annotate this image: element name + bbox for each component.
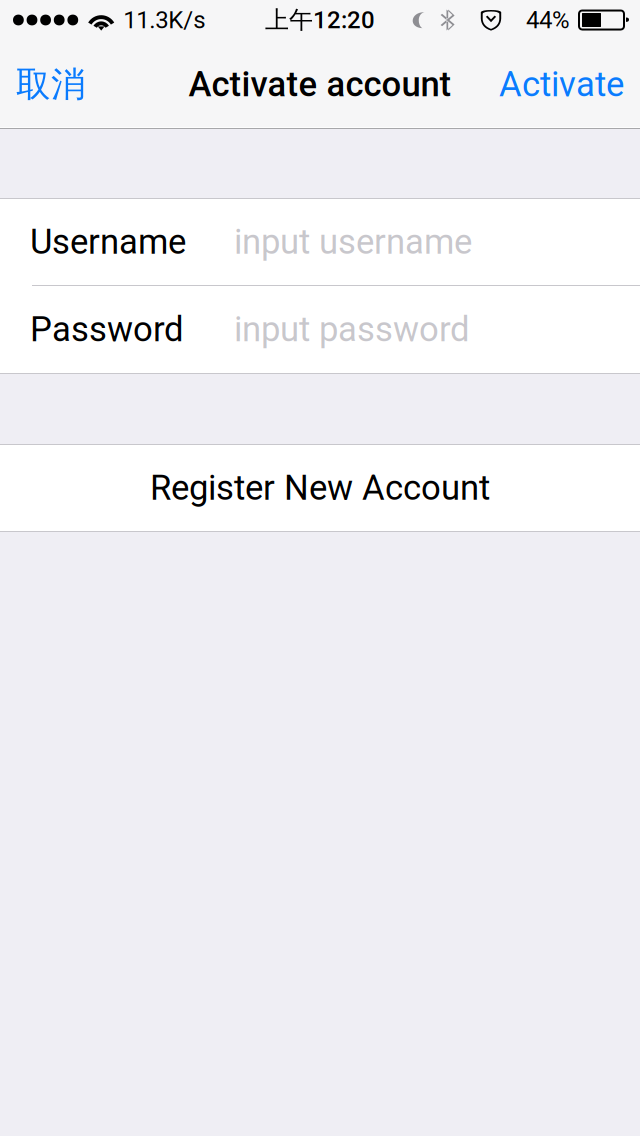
staticText: Register New Account [150, 468, 490, 508]
staticText: 取消 [16, 63, 86, 106]
staticText: Activate account [188, 64, 451, 105]
staticText: input password [234, 309, 470, 350]
button[interactable]: Password [0, 286, 640, 373]
staticText: 11.3K/s [123, 6, 205, 34]
staticText: Username [30, 222, 186, 262]
button[interactable]: Register New Account [0, 445, 640, 531]
button[interactable]: Username [0, 199, 640, 285]
staticText: Password [30, 309, 184, 350]
button[interactable]: 取消 [0, 40, 102, 128]
staticText: input username [234, 222, 472, 262]
staticText: 上午 [265, 5, 313, 35]
staticText: 12:20 [313, 6, 375, 34]
button[interactable]: Activate [483, 40, 640, 128]
staticText: 44% [526, 6, 570, 34]
staticText: Activate [499, 64, 624, 105]
